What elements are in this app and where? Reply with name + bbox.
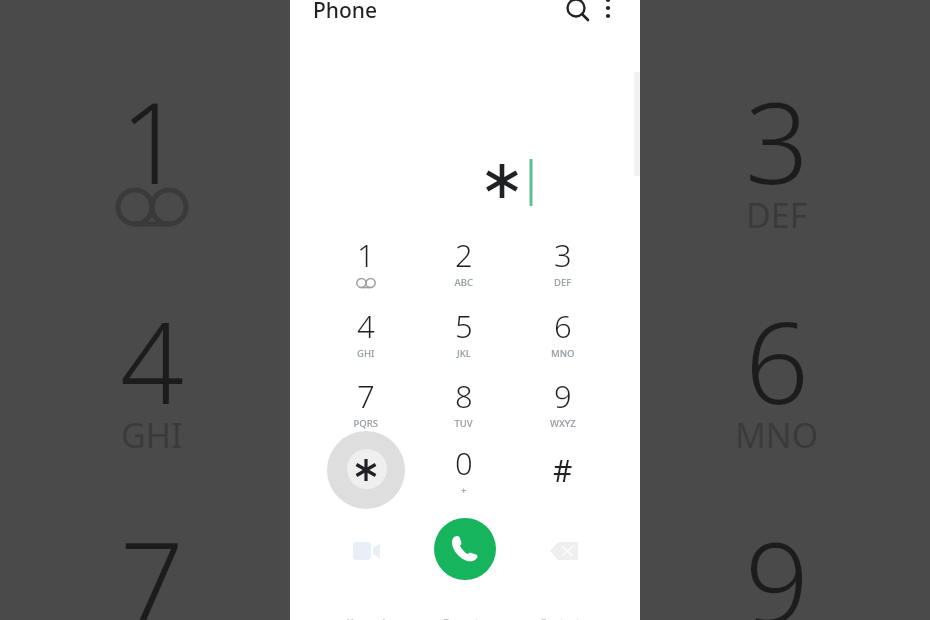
button[interactable]: Dial * <box>327 431 405 509</box>
button[interactable]: Dial 2 <box>425 223 503 301</box>
button[interactable]: Dial 4 <box>327 294 405 372</box>
button[interactable]: Dial 0 <box>425 431 503 509</box>
button[interactable]: Video call <box>342 527 390 575</box>
button[interactable] <box>290 0 490 26</box>
button[interactable]: Dial 7 <box>327 364 405 442</box>
button[interactable]: Search <box>554 0 598 20</box>
button[interactable]: Dial 6 <box>524 294 602 372</box>
button[interactable]: Dial 9 <box>524 364 602 442</box>
button[interactable]: Dial 3 <box>524 223 602 301</box>
button[interactable]: Delete <box>540 527 588 575</box>
button[interactable]: Dial # <box>524 431 602 509</box>
button[interactable]: Dial 8 <box>425 364 503 442</box>
button[interactable] <box>330 140 600 216</box>
button[interactable]: Call <box>434 518 496 580</box>
button[interactable]: More options <box>586 0 630 20</box>
button[interactable]: Dial 1 <box>327 223 405 301</box>
button[interactable]: Dial 5 <box>425 294 503 372</box>
